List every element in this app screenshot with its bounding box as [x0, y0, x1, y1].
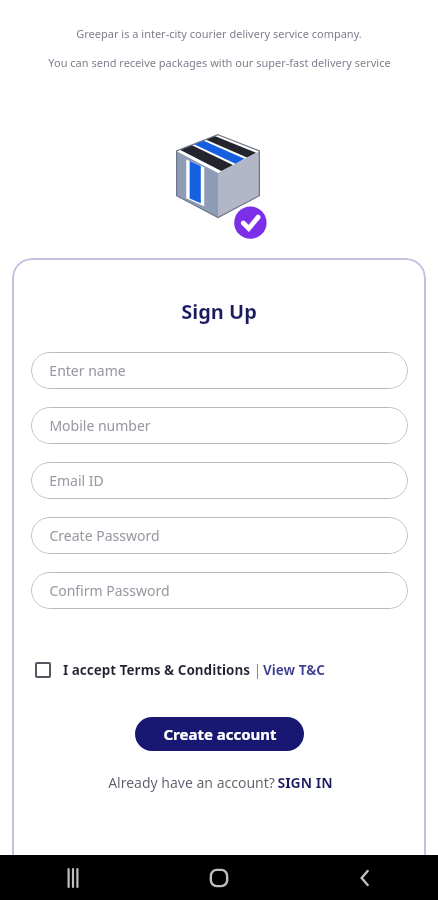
button[interactable]: Mobile number [31, 407, 408, 444]
staticText: Create Password [49, 526, 160, 545]
button[interactable]: Home [146, 855, 292, 900]
button[interactable]: Create Password [31, 517, 408, 554]
button[interactable]: I accept Terms & Conditions [61, 661, 325, 679]
staticText: SIGN IN [277, 773, 333, 792]
button[interactable]: Email ID [31, 462, 408, 499]
staticText: Create account [163, 724, 277, 744]
button[interactable]: Accept terms checkbox [30, 657, 56, 683]
button[interactable]: Create account [135, 717, 304, 751]
button[interactable]: Enter name [31, 352, 408, 389]
button[interactable]: Already have an account? [106, 773, 333, 792]
staticText: Sign Up [181, 298, 257, 325]
staticText: I accept Terms & Conditions [61, 661, 252, 679]
staticText: Mobile number [49, 416, 151, 435]
staticText: You can send receive packages with our s… [48, 55, 391, 70]
staticText: View T&C [263, 661, 325, 679]
staticText: Enter name [49, 361, 126, 380]
button[interactable]: Back [292, 855, 438, 900]
staticText: Confirm Password [49, 581, 170, 600]
button[interactable]: Recent apps [0, 855, 146, 900]
button[interactable]: Confirm Password [31, 572, 408, 609]
staticText: | [252, 661, 263, 679]
staticText: Greepar is a inter-city courier delivery… [76, 26, 362, 41]
staticText: Already have an account? [106, 773, 277, 792]
staticText: Email ID [49, 471, 104, 490]
